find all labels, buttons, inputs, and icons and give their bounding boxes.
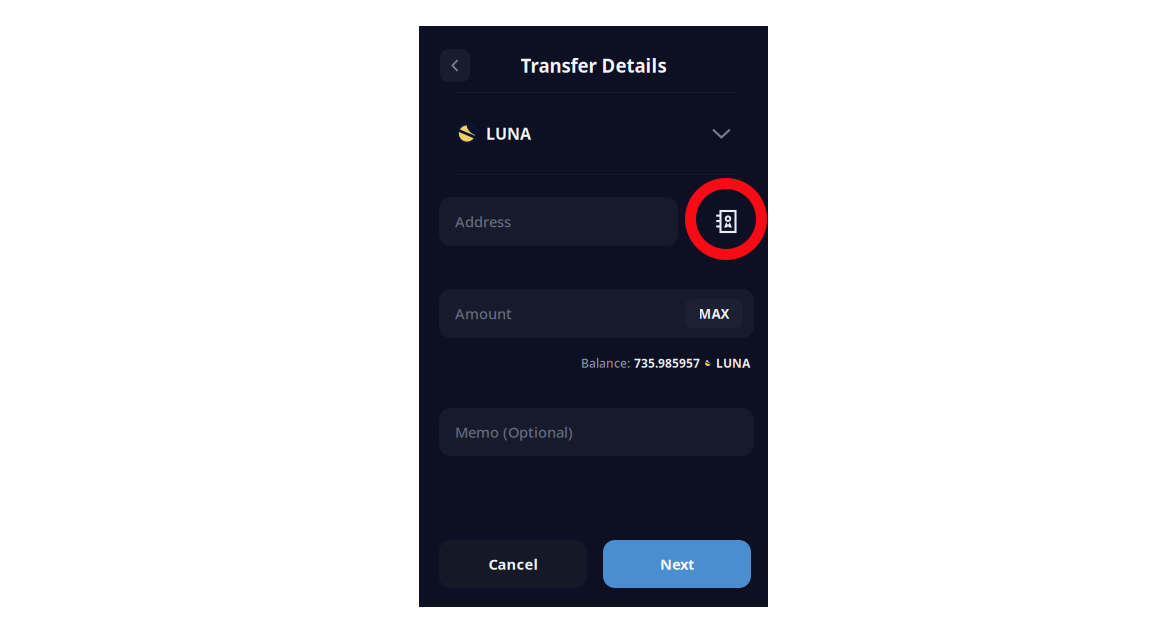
button[interactable]: MAX <box>685 299 743 328</box>
button[interactable]: Choose from address book <box>702 197 750 246</box>
staticText: Amount <box>455 304 512 323</box>
staticText: Balance: <box>581 355 630 371</box>
staticText: Cancel <box>488 554 537 574</box>
staticText: Next <box>660 554 694 574</box>
staticText: LUNA <box>716 355 750 371</box>
button[interactable]: Cancel <box>439 540 587 588</box>
button[interactable]: Next <box>603 540 751 588</box>
staticText: Address <box>455 212 511 231</box>
staticText: 735.985957 <box>634 355 700 371</box>
staticText: LUNA <box>486 123 531 144</box>
button[interactable]: LUNA <box>419 93 768 174</box>
staticText: Memo (Optional) <box>455 422 573 442</box>
button[interactable]: Back <box>440 49 470 82</box>
staticText: MAX <box>698 305 729 322</box>
staticText: Transfer Details <box>520 53 666 78</box>
